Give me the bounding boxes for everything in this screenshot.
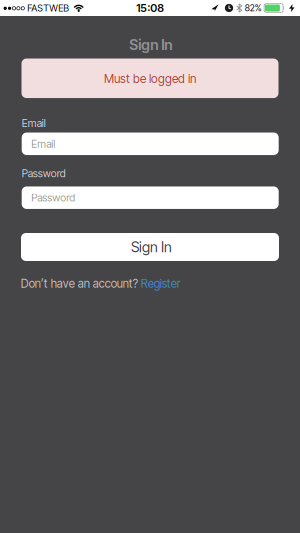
staticText: Password (22, 167, 66, 180)
staticText: Sign In (129, 36, 172, 53)
button[interactable]: Register (141, 276, 181, 290)
button[interactable]: Sign In (21, 233, 279, 261)
staticText: Must be logged in (104, 72, 196, 86)
staticText: FASTWEB (27, 2, 69, 14)
staticText: Email (31, 137, 55, 150)
staticText: 15:08 (136, 1, 164, 15)
staticText: Don’t have an account? (21, 276, 141, 290)
staticText: Sign In (131, 238, 172, 256)
staticText: 82% (245, 3, 262, 13)
staticText: Password (31, 191, 75, 204)
staticText: Register (141, 276, 181, 290)
textField[interactable]: Email (31, 137, 279, 150)
textField[interactable]: Password (31, 191, 279, 204)
staticText: Email (22, 117, 46, 129)
